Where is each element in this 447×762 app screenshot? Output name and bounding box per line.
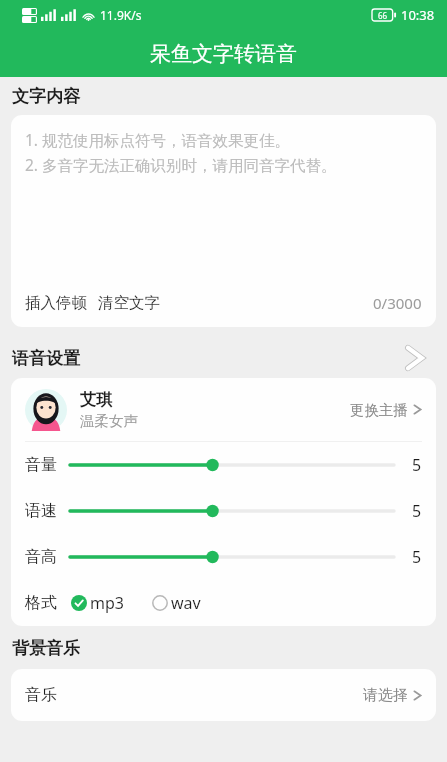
staticText: wav: [171, 592, 201, 614]
staticText: 音量: [25, 455, 57, 475]
staticText: 格式: [25, 593, 57, 613]
button[interactable]: [70, 455, 394, 475]
staticText: 语音设置: [12, 348, 80, 369]
staticText: 11.9K/s: [100, 7, 142, 23]
staticText: mp3: [90, 592, 124, 614]
staticText: 5: [412, 546, 422, 568]
button[interactable]: wav: [152, 592, 201, 614]
staticText: 5: [412, 500, 422, 522]
staticText: 清空文字: [98, 293, 160, 313]
button[interactable]: 艾琪: [11, 378, 436, 441]
staticText: 5: [412, 454, 422, 476]
staticText: 语速: [25, 501, 57, 521]
button[interactable]: 插入停顿: [25, 293, 87, 313]
staticText: 温柔女声: [80, 412, 138, 430]
staticText: 音高: [25, 547, 57, 567]
staticText: 文字内容: [12, 86, 80, 107]
staticText: 插入停顿: [25, 293, 87, 313]
staticText: 背景音乐: [12, 638, 80, 659]
button[interactable]: mp3: [71, 592, 124, 614]
staticText: 0/3000: [373, 293, 422, 313]
button[interactable]: 清空文字: [98, 293, 160, 313]
staticText: 10:38: [401, 6, 435, 24]
staticText: 请选择: [363, 686, 408, 705]
staticText: 2. 多音字无法正确识别时，请用同音字代替。: [25, 154, 337, 175]
button[interactable]: 展开语音设置: [395, 339, 433, 377]
staticText: 艾琪: [80, 390, 112, 410]
staticText: 呆鱼文字转语音: [150, 41, 297, 67]
button[interactable]: 音乐: [11, 669, 436, 721]
button[interactable]: [70, 501, 394, 521]
staticText: 音乐: [25, 685, 57, 705]
staticText: 1. 规范使用标点符号，语音效果更佳。: [25, 129, 291, 150]
staticText: 更换主播: [350, 401, 408, 419]
button[interactable]: [70, 547, 394, 567]
staticText: 66: [378, 10, 388, 21]
